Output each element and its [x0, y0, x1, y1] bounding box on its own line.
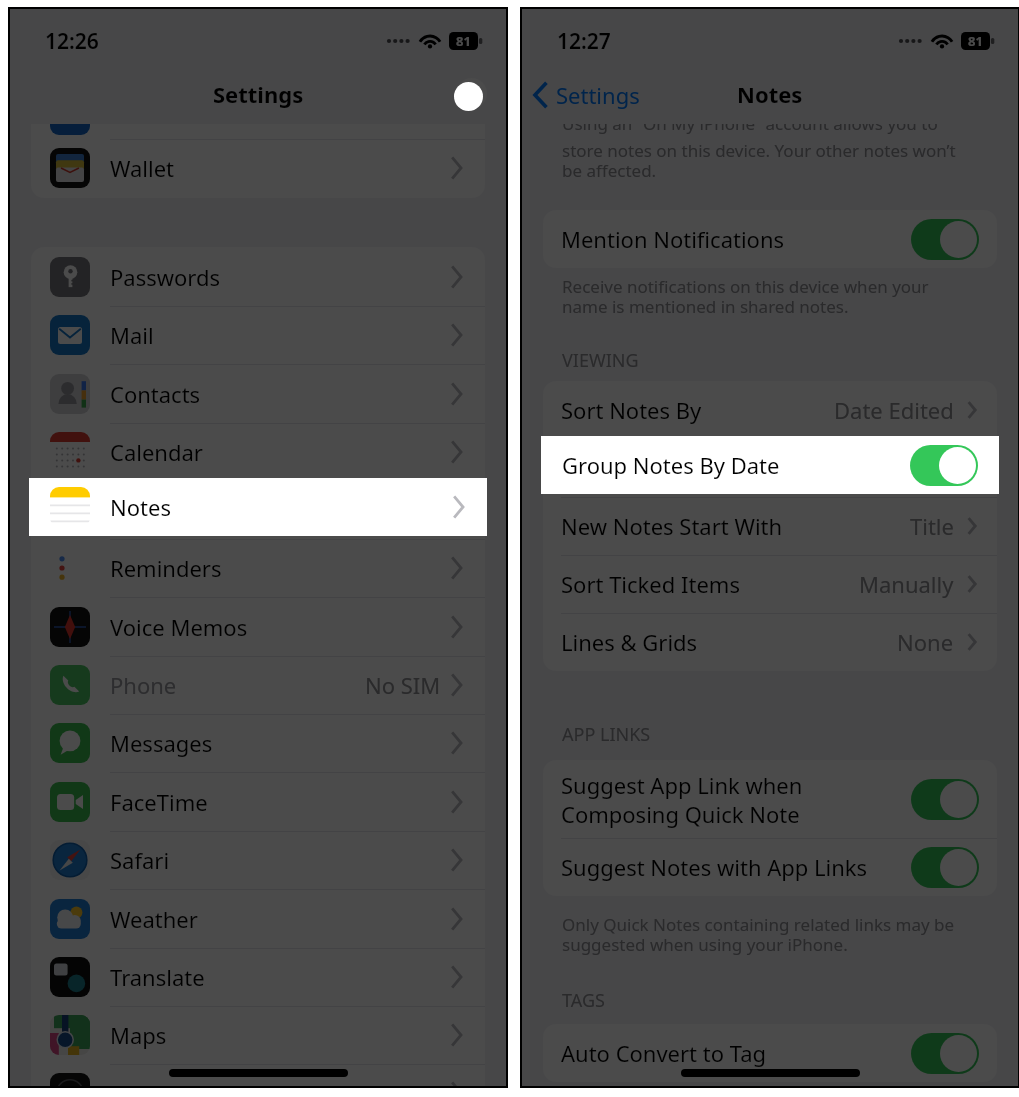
staticText: Mention Notifications — [561, 224, 785, 254]
button[interactable]: Sort Ticked Items — [543, 555, 997, 613]
staticText: Safari — [110, 845, 170, 875]
staticText: FaceTime — [110, 787, 208, 817]
staticText: 81 — [456, 32, 471, 50]
staticText: Only Quick Notes containing related link… — [562, 913, 955, 956]
staticText: Notes — [737, 79, 803, 109]
staticText: APP LINKS — [562, 722, 651, 747]
staticText: Settings — [213, 79, 304, 109]
staticText: Wallet — [110, 153, 175, 183]
staticText: Receive notifications on this device whe… — [562, 275, 929, 318]
staticText: Phone — [110, 670, 177, 700]
staticText: Reminders — [110, 553, 222, 583]
staticText: Sort Ticked Items — [561, 569, 740, 599]
staticText: Weather — [110, 904, 198, 934]
staticText: None — [897, 627, 954, 657]
staticText: Messages — [110, 728, 213, 758]
button[interactable]: Reminders — [31, 539, 485, 597]
staticText: Suggest App Link when Composing Quick No… — [561, 770, 803, 829]
button[interactable]: Phone — [31, 656, 485, 714]
button[interactable]: Notes — [29, 478, 487, 536]
button[interactable]: FaceTime — [31, 772, 485, 831]
button[interactable]: Voice Memos — [31, 597, 485, 656]
button[interactable]: Suggest Notes with App Links — [543, 838, 997, 896]
staticText: No SIM — [365, 670, 441, 700]
staticText: Settings — [556, 80, 640, 110]
button[interactable]: Notes — [31, 478, 487, 536]
button[interactable]: Messages — [31, 714, 485, 772]
staticText: Notes — [110, 495, 171, 525]
staticText: Translate — [110, 962, 205, 992]
staticText: Suggest Notes with App Links — [561, 852, 868, 882]
staticText: TAGS — [562, 988, 605, 1013]
button[interactable]: Contacts — [31, 364, 485, 423]
button[interactable]: Sort Notes By — [543, 381, 997, 439]
staticText: 12:26 — [45, 27, 99, 56]
button[interactable]: Mention Notifications — [543, 210, 997, 268]
button[interactable]: Weather — [31, 889, 485, 948]
staticText: Passwords — [110, 262, 221, 292]
staticText: Maps — [110, 1020, 167, 1050]
staticText: Using an “On My iPhone” account allows y… — [562, 124, 938, 135]
button[interactable]: Account — [456, 78, 487, 109]
staticText: Calendar — [110, 437, 203, 467]
button[interactable]: Group Notes By Date — [541, 436, 999, 494]
button[interactable]: Notes — [31, 481, 485, 539]
staticText: Date Edited — [834, 395, 954, 425]
button[interactable]: Wallet — [31, 139, 485, 197]
button[interactable]: Passwords — [31, 247, 485, 306]
staticText: Voice Memos — [110, 612, 248, 642]
button[interactable]: Lines & Grids — [543, 613, 997, 671]
button[interactable]: Group Notes By Date — [543, 439, 997, 497]
staticText: Sort Notes By — [561, 395, 702, 425]
button[interactable]: Account — [454, 82, 483, 111]
button[interactable]: New Notes Start With — [543, 497, 997, 555]
staticText: Title — [910, 511, 954, 541]
staticText: New Notes Start With — [561, 511, 783, 541]
staticText: Lines & Grids — [561, 627, 698, 657]
staticText: store notes on this device. Your other n… — [562, 139, 956, 182]
button[interactable]: Safari — [31, 831, 485, 889]
staticText: Contacts — [110, 379, 201, 409]
staticText: Group Notes By Date — [561, 453, 779, 483]
staticText: Notes — [110, 492, 171, 522]
button[interactable]: Auto Convert to Tag — [543, 1024, 997, 1082]
staticText: Auto Convert to Tag — [561, 1038, 767, 1068]
button[interactable]: Settings — [533, 80, 640, 110]
staticText: 81 — [968, 32, 983, 50]
button[interactable]: Translate — [31, 948, 485, 1006]
button[interactable]: Group Notes By Date — [544, 436, 996, 494]
button[interactable]: Mail — [31, 306, 485, 364]
staticText: 12:27 — [557, 27, 611, 56]
staticText: Group Notes By Date — [562, 450, 780, 480]
button[interactable]: Maps — [31, 1006, 485, 1064]
button[interactable]: Calendar — [31, 423, 485, 481]
staticText: Manually — [859, 569, 954, 599]
staticText: VIEWING — [562, 348, 639, 373]
staticText: Mail — [110, 320, 154, 350]
button[interactable]: Suggest App Link when Composing Quick No… — [543, 760, 997, 838]
button[interactable]: Compass — [31, 1064, 485, 1086]
